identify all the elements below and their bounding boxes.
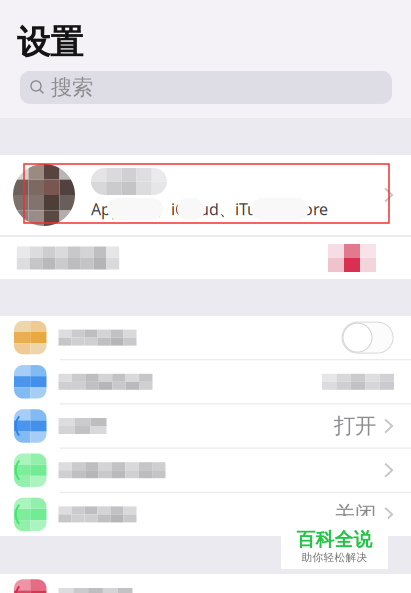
staticText: 打开: [334, 413, 376, 439]
staticText: 设置: [17, 22, 83, 63]
button[interactable]: [0, 574, 411, 593]
button[interactable]: [0, 449, 411, 492]
button[interactable]: [0, 237, 411, 279]
staticText: 关闭: [334, 501, 376, 527]
button[interactable]: [0, 316, 411, 359]
staticText: 百科全说: [296, 528, 372, 551]
staticText: Apple ID、iCloud、iTunes Store: [91, 198, 328, 220]
button[interactable]: [0, 360, 411, 403]
staticText: 搜索: [51, 74, 93, 100]
button[interactable]: 关闭: [0, 493, 411, 536]
button[interactable]: 搜索: [20, 71, 392, 104]
staticText: 助你轻松解决: [301, 551, 367, 564]
button[interactable]: 打开: [0, 404, 411, 448]
button[interactable]: Apple ID、iCloud、iTunes Store: [0, 155, 411, 235]
